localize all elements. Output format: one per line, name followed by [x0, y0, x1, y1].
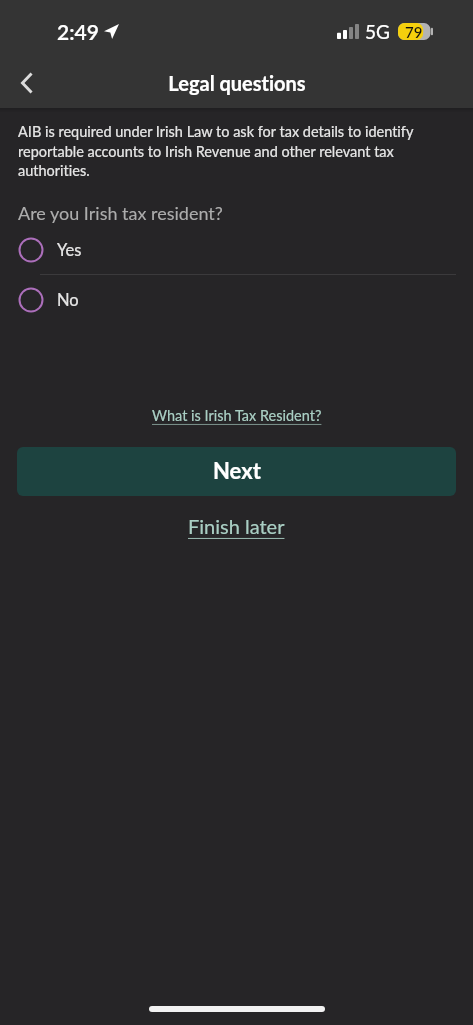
staticText: 5G [365, 20, 390, 43]
button[interactable]: Back [3, 59, 51, 107]
staticText: No [57, 290, 79, 310]
button[interactable]: Yes [0, 225, 473, 274]
staticText: Yes [57, 240, 82, 260]
staticText: 79 [405, 23, 423, 40]
button[interactable]: What is Irish Tax Resident? [144, 403, 330, 428]
staticText: Legal questions [168, 71, 306, 95]
staticText: Are you Irish tax resident? [18, 202, 223, 224]
button[interactable]: No [0, 275, 473, 324]
staticText: AIB is required under Irish Law to ask f… [18, 123, 431, 179]
staticText: 2:49 [57, 19, 99, 44]
button[interactable]: Finish later [180, 512, 293, 540]
button[interactable]: Next [17, 447, 456, 496]
staticText: Next [213, 457, 261, 483]
